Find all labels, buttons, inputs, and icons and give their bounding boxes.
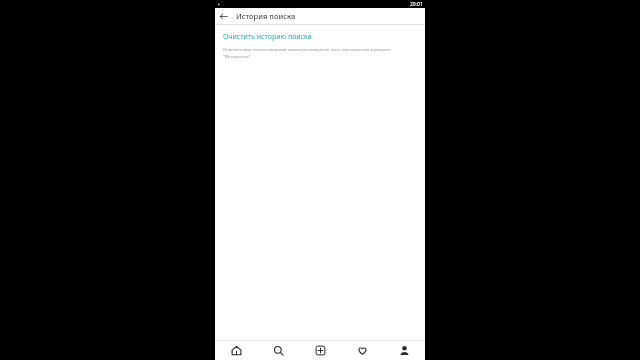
button[interactable]: Back <box>215 8 231 24</box>
button[interactable]: Profile <box>383 341 425 360</box>
button[interactable]: Add post <box>299 341 341 360</box>
staticText: 20:01 <box>410 1 423 8</box>
staticText: Очистить ваш список запросов поиска из а… <box>223 47 417 59</box>
button[interactable]: Activity <box>341 341 383 360</box>
staticText: Очистить историю поиска <box>223 32 312 42</box>
button[interactable]: Home <box>215 341 257 360</box>
button[interactable]: Search <box>257 341 299 360</box>
staticText: История поиска <box>236 11 296 21</box>
button[interactable]: Очистить историю поиска <box>215 30 425 44</box>
